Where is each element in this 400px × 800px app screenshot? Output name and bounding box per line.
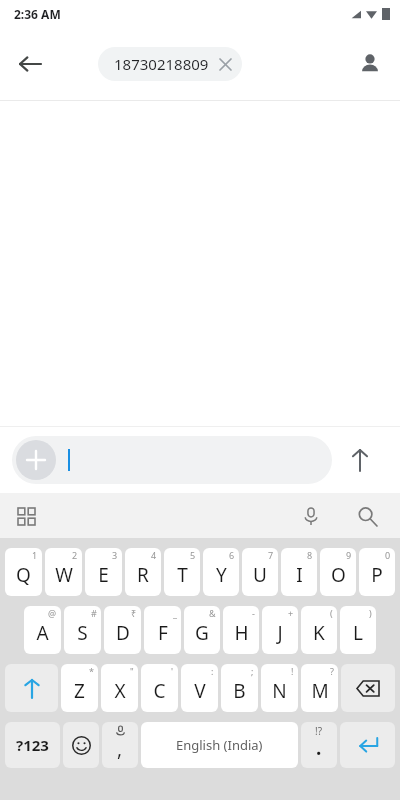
button[interactable]: @ — [24, 606, 61, 654]
staticText: 1 — [32, 549, 38, 561]
button[interactable]: Emoji — [63, 722, 99, 768]
staticText: X — [114, 678, 126, 704]
staticText: . — [316, 735, 322, 761]
button[interactable]: Clipboard — [8, 498, 44, 534]
button[interactable]: ?123 — [5, 722, 60, 768]
staticText: L — [353, 620, 363, 646]
button[interactable]: 2 — [45, 548, 82, 596]
button[interactable]: !? — [301, 722, 337, 768]
staticText: 3 — [112, 549, 118, 561]
staticText: 7 — [268, 549, 274, 561]
staticText: 18730218809 — [114, 54, 209, 74]
staticText: F — [158, 620, 168, 646]
button[interactable]: Backspace — [341, 664, 395, 712]
button[interactable]: 8 — [281, 548, 317, 596]
button[interactable]: English (India) — [141, 722, 298, 768]
staticText: S — [77, 620, 88, 646]
staticText: ? — [330, 665, 334, 677]
staticText: - — [252, 607, 255, 619]
button[interactable]: : — [181, 664, 218, 712]
button[interactable]: _ — [144, 606, 181, 654]
staticText: * — [89, 665, 94, 677]
staticText: ! — [291, 665, 294, 677]
staticText: , — [117, 736, 123, 762]
staticText: U — [253, 562, 267, 588]
staticText: E — [98, 562, 109, 588]
button[interactable]: ( — [301, 606, 337, 654]
staticText: ' — [171, 665, 174, 677]
button[interactable]: * — [61, 664, 98, 712]
staticText: V — [194, 678, 206, 704]
staticText: ) — [369, 607, 372, 619]
button[interactable]: # — [64, 606, 101, 654]
button[interactable]: 9 — [320, 548, 356, 596]
staticText: + — [288, 607, 294, 619]
button[interactable]: , — [102, 722, 138, 768]
button[interactable]: + — [262, 606, 298, 654]
staticText: H — [234, 620, 249, 646]
staticText: & — [209, 607, 216, 619]
staticText: " — [130, 665, 134, 677]
staticText: 6 — [229, 549, 235, 561]
staticText: Y — [216, 562, 227, 588]
staticText: O — [331, 562, 346, 588]
button[interactable]: Add attachment — [16, 440, 56, 480]
staticText: 5 — [190, 549, 196, 561]
button[interactable]: ) — [340, 606, 376, 654]
staticText: 2:36 AM — [14, 6, 61, 22]
staticText: 2 — [72, 549, 78, 561]
button[interactable]: Send — [332, 432, 388, 488]
button[interactable]: Add attachment — [12, 436, 332, 484]
button[interactable]: Back — [6, 40, 54, 88]
button[interactable]: - — [223, 606, 259, 654]
staticText: Z — [74, 678, 85, 704]
staticText: B — [233, 678, 246, 704]
staticText: D — [116, 620, 130, 646]
button[interactable]: ' — [141, 664, 178, 712]
staticText: J — [277, 620, 283, 646]
button[interactable]: & — [184, 606, 220, 654]
staticText: 9 — [346, 549, 352, 561]
staticText: W — [55, 562, 73, 588]
button[interactable]: 5 — [164, 548, 200, 596]
staticText: : — [211, 665, 214, 677]
staticText: M — [311, 678, 329, 704]
staticText: P — [371, 562, 383, 588]
button[interactable]: 7 — [242, 548, 278, 596]
button[interactable]: Voice input — [294, 499, 328, 533]
staticText: N — [272, 678, 287, 704]
staticText: English (India) — [176, 736, 263, 754]
staticText: R — [137, 562, 149, 588]
staticText: _ — [173, 607, 177, 619]
staticText: G — [195, 620, 209, 646]
staticText: T — [177, 562, 188, 588]
button[interactable]: Contact details — [348, 42, 392, 86]
button[interactable]: 3 — [85, 548, 122, 596]
staticText: K — [313, 620, 325, 646]
button[interactable]: " — [101, 664, 138, 712]
button[interactable]: Shift — [5, 664, 58, 712]
staticText: C — [153, 678, 166, 704]
staticText: ₹ — [131, 607, 137, 619]
button[interactable]: ₹ — [104, 606, 141, 654]
staticText: # — [91, 607, 97, 619]
staticText: ; — [251, 665, 254, 677]
staticText: 4 — [151, 549, 157, 561]
button[interactable]: 6 — [203, 548, 239, 596]
button[interactable]: ? — [301, 664, 338, 712]
button[interactable]: 18730218809 — [98, 47, 242, 81]
button[interactable]: 0 — [359, 548, 395, 596]
button[interactable]: Enter — [340, 722, 395, 768]
staticText: @ — [48, 607, 57, 619]
staticText: !? — [315, 724, 323, 738]
button[interactable]: ! — [261, 664, 298, 712]
staticText: ?123 — [16, 735, 49, 755]
button[interactable]: 1 — [5, 548, 42, 596]
staticText: I — [296, 562, 303, 588]
button[interactable]: ; — [221, 664, 258, 712]
staticText: 8 — [307, 549, 313, 561]
button[interactable]: Search — [350, 499, 384, 533]
button[interactable]: 4 — [125, 548, 161, 596]
staticText: 0 — [385, 549, 391, 561]
staticText: Q — [16, 562, 31, 588]
